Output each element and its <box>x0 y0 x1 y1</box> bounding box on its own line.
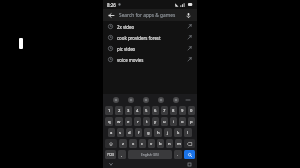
button[interactable]: k <box>174 128 182 137</box>
staticText: d <box>128 130 131 136</box>
staticText: 8:26 <box>107 2 116 8</box>
button[interactable]: w <box>115 117 123 126</box>
button[interactable]: q <box>105 117 113 126</box>
staticText: r <box>137 119 139 125</box>
staticText: t <box>146 119 148 125</box>
button[interactable]: e <box>125 117 132 126</box>
button[interactable]: , <box>118 150 126 159</box>
staticText: 2 <box>118 108 121 114</box>
staticText: l <box>187 130 189 136</box>
button[interactable]: i <box>170 117 177 126</box>
button[interactable]: pic video <box>103 43 197 54</box>
button[interactable]: t <box>143 117 150 126</box>
staticText: f <box>138 130 140 136</box>
button[interactable]: Keyboard tool 5 <box>168 97 183 103</box>
staticText: 1 <box>108 108 111 114</box>
button[interactable]: Hide keyboard <box>108 161 114 167</box>
staticText: m <box>177 141 181 147</box>
staticText: z <box>122 141 124 147</box>
staticText: 7 <box>163 108 166 114</box>
button[interactable]: s <box>117 128 124 137</box>
button[interactable]: u <box>161 117 168 126</box>
button[interactable]: b <box>157 139 164 148</box>
staticText: pic video <box>117 46 136 52</box>
button[interactable]: cook providers forest <box>103 32 197 43</box>
button[interactable]: Keyboard tool 3 <box>138 97 153 103</box>
button[interactable]: 9 <box>179 106 186 115</box>
button[interactable]: 2x video <box>103 21 197 32</box>
staticText: 6 <box>154 108 157 114</box>
button[interactable]: a <box>108 128 115 137</box>
button[interactable]: l <box>184 128 192 137</box>
staticText: j <box>167 130 169 136</box>
button[interactable]: g <box>144 128 152 137</box>
staticText: 2x video <box>117 24 135 30</box>
staticText: 3 <box>127 108 130 114</box>
staticText: v <box>150 141 153 147</box>
button[interactable]: Keyboard tool 2 <box>123 97 138 103</box>
staticText: w <box>117 119 121 125</box>
button[interactable]: Keyboard tool 4 <box>153 97 168 103</box>
button[interactable]: r <box>134 117 141 126</box>
button[interactable]: p <box>188 117 195 126</box>
staticText: . <box>177 152 179 158</box>
button[interactable]: voice movies <box>103 54 197 65</box>
button[interactable]: n <box>166 139 173 148</box>
button[interactable]: Collapse toolbar <box>183 98 192 102</box>
staticText: p <box>190 119 193 125</box>
button[interactable]: d <box>126 128 133 137</box>
staticText: 5 <box>145 108 148 114</box>
button[interactable]: ?123 <box>105 150 116 159</box>
button[interactable]: Keyboard tool 1 <box>108 97 123 103</box>
button[interactable]: m <box>175 139 182 148</box>
staticText: cook providers forest <box>117 35 161 41</box>
staticText: a <box>110 130 113 136</box>
button[interactable]: 6 <box>152 106 159 115</box>
button[interactable]: 0 <box>188 106 195 115</box>
staticText: s <box>119 130 122 136</box>
staticText: o <box>181 119 184 125</box>
button[interactable]: Recents <box>186 161 192 167</box>
button[interactable]: h <box>154 128 162 137</box>
button[interactable]: 7 <box>161 106 168 115</box>
staticText: c <box>141 141 144 147</box>
staticText: e <box>127 119 130 125</box>
button[interactable]: x <box>129 139 137 148</box>
button[interactable]: English (US) <box>128 150 172 159</box>
button[interactable]: 1 <box>105 106 113 115</box>
button[interactable]: 5 <box>143 106 150 115</box>
button[interactable]: Voice search <box>184 11 193 20</box>
button[interactable]: z <box>119 139 127 148</box>
staticText: y <box>154 119 157 125</box>
button[interactable]: f <box>135 128 142 137</box>
button[interactable]: o <box>179 117 186 126</box>
button[interactable]: Search for apps & games <box>119 12 184 19</box>
button[interactable]: Back <box>107 11 116 20</box>
staticText: u <box>163 119 166 125</box>
staticText: English (US) <box>141 153 159 157</box>
button[interactable]: Search <box>184 150 195 159</box>
button[interactable]: y <box>152 117 159 126</box>
staticText: 8 <box>172 108 175 114</box>
button[interactable]: j <box>164 128 172 137</box>
staticText: h <box>157 130 160 136</box>
staticText: 0 <box>190 108 193 114</box>
staticText: k <box>177 130 180 136</box>
staticText: voice movies <box>117 57 144 63</box>
button[interactable]: . <box>174 150 182 159</box>
staticText: 4 <box>136 108 139 114</box>
staticText: x <box>132 141 135 147</box>
button[interactable]: 8 <box>170 106 177 115</box>
button[interactable]: Backspace <box>184 139 195 148</box>
button[interactable]: 2 <box>115 106 123 115</box>
button[interactable]: Shift <box>105 139 117 148</box>
staticText: g <box>147 130 150 136</box>
button[interactable]: v <box>148 139 155 148</box>
button[interactable]: 3 <box>125 106 132 115</box>
button[interactable]: 4 <box>134 106 141 115</box>
button[interactable]: c <box>139 139 146 148</box>
staticText: b <box>159 141 162 147</box>
staticText: n <box>168 141 171 147</box>
staticText: 9 <box>181 108 184 114</box>
staticText: ?123 <box>107 153 114 157</box>
